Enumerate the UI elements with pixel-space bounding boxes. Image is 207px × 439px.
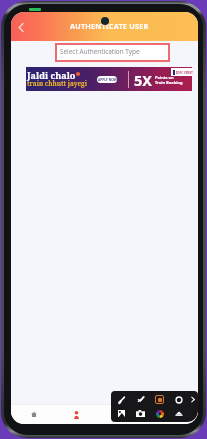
button[interactable]: Camera [131, 407, 150, 420]
staticText: Train Booking [155, 80, 183, 85]
staticText: Select Authentication Type [60, 47, 140, 56]
button[interactable]: Profile [65, 405, 87, 424]
button[interactable]: Jaldi chalo [26, 67, 192, 91]
button[interactable]: Fill [169, 407, 188, 420]
staticText: train chhutt jayegi [27, 79, 87, 88]
button[interactable]: More tools [188, 393, 198, 406]
button[interactable]: Back [12, 18, 30, 36]
staticText: Points on [155, 75, 174, 80]
staticText: Jaldi chalo [27, 69, 76, 81]
button[interactable]: Circle [169, 393, 188, 406]
button[interactable]: Crop [112, 407, 131, 420]
staticText: APPLY NOW [98, 78, 117, 82]
staticText: IDFC FIRST [176, 71, 193, 75]
button[interactable]: Brush [112, 393, 131, 406]
button[interactable]: Home [23, 405, 45, 424]
button[interactable]: Colour [150, 407, 169, 420]
staticText: AUTHENTICATE USER [70, 21, 149, 31]
button[interactable]: Magic wand [131, 393, 150, 406]
staticText: 5X [134, 70, 153, 90]
button[interactable]: APPLY NOW [97, 76, 117, 83]
button[interactable]: Select Authentication Type [55, 43, 170, 62]
button[interactable]: Shape [150, 393, 169, 406]
